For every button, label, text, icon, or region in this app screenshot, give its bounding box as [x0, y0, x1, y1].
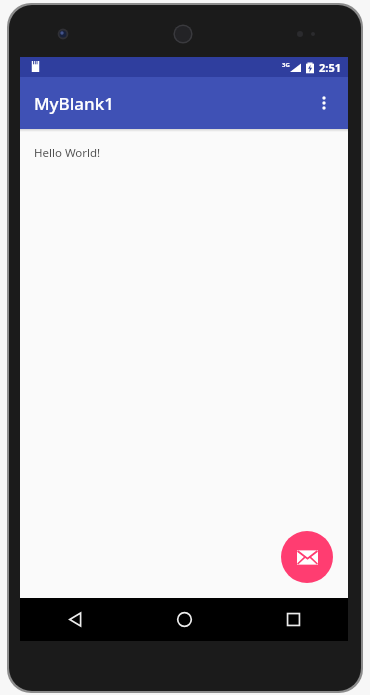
button[interactable]: More options [306, 85, 342, 121]
staticText: MyBlank1 [34, 92, 114, 115]
staticText: 3G [282, 61, 290, 69]
button[interactable]: Recent apps [239, 598, 348, 641]
button[interactable]: Compose email [281, 531, 333, 583]
staticText: 2:51 [319, 60, 341, 75]
staticText: Hello World! [34, 145, 101, 161]
button[interactable]: Home [130, 598, 239, 641]
button[interactable]: Back [20, 598, 130, 641]
